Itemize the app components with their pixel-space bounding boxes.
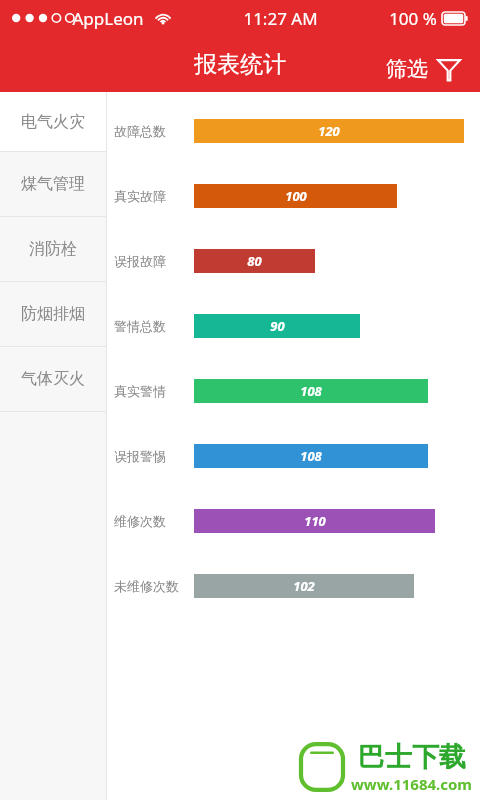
staticText: 真实故障 (114, 188, 166, 204)
button[interactable]: 防烟排烟 (0, 281, 106, 346)
staticText: 100 (285, 187, 307, 205)
staticText: 80 (247, 252, 262, 270)
staticText: 102 (293, 577, 315, 595)
staticText: 110 (304, 512, 326, 530)
button[interactable]: 真实故障 (106, 163, 480, 228)
button[interactable]: 气体灭火 (0, 346, 106, 411)
staticText: 误报警惕 (114, 448, 166, 464)
button[interactable]: 煤气管理 (0, 151, 106, 216)
button[interactable]: 筛选 (382, 52, 466, 86)
staticText: 筛选 (386, 56, 428, 82)
staticText: www.11684.com (351, 774, 472, 794)
staticText: 警情总数 (114, 318, 166, 334)
other: Filter (436, 56, 462, 82)
staticText: 误报故障 (114, 253, 166, 269)
staticText: 维修次数 (114, 513, 166, 529)
staticText: 100 % (389, 7, 437, 30)
staticText: 煤气管理 (21, 174, 85, 194)
staticText: 防烟排烟 (21, 304, 85, 324)
button[interactable]: 真实警情 (106, 358, 480, 423)
button[interactable]: 误报警惕 (106, 423, 480, 488)
staticText: 真实警情 (114, 383, 166, 399)
staticText: 巴士下载 (358, 740, 466, 774)
staticText: 消防栓 (29, 239, 77, 259)
staticText: 90 (270, 317, 285, 335)
staticText: 未维修次数 (114, 578, 179, 594)
button[interactable]: 未维修次数 (106, 553, 480, 618)
staticText: 108 (300, 382, 322, 400)
button[interactable]: 误报故障 (106, 228, 480, 293)
staticText: 故障总数 (114, 123, 166, 139)
staticText: 电气火灾 (21, 112, 85, 132)
button[interactable]: 警情总数 (106, 293, 480, 358)
staticText: 气体灭火 (21, 369, 85, 389)
button[interactable]: 故障总数 (106, 98, 480, 163)
staticText: 108 (300, 447, 322, 465)
button[interactable]: 消防栓 (0, 216, 106, 281)
staticText: 120 (318, 122, 340, 140)
staticText: 11:27 AM (243, 7, 318, 30)
staticText: AppLeon (72, 7, 144, 30)
staticText: 报表统计 (194, 50, 286, 79)
button[interactable]: 电气火灾 (0, 92, 106, 151)
button[interactable]: 维修次数 (106, 488, 480, 553)
